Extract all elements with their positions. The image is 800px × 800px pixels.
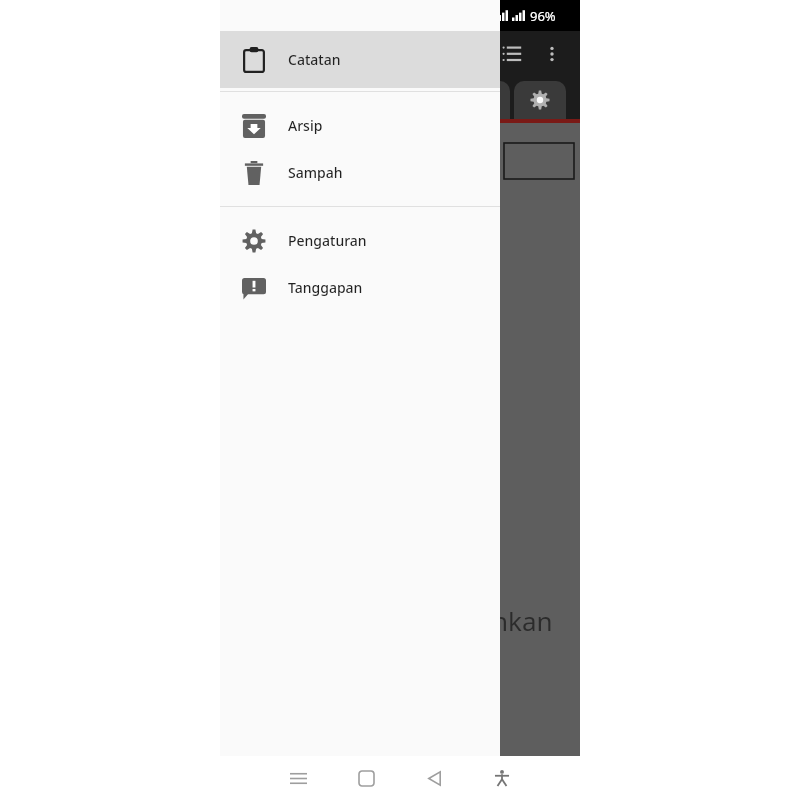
staticText: 96% bbox=[530, 7, 556, 25]
button[interactable]: Menu bbox=[280, 760, 316, 796]
button[interactable]: List view bbox=[492, 34, 532, 74]
button[interactable]: Home bbox=[348, 760, 384, 796]
button[interactable]: Accessibility bbox=[484, 760, 520, 796]
staticText: nkan bbox=[492, 603, 553, 638]
button[interactable]: More options bbox=[532, 34, 572, 74]
button[interactable]: Tab bbox=[466, 81, 510, 119]
button[interactable]: Sampah bbox=[220, 149, 500, 196]
button[interactable]: Tanggapan bbox=[220, 264, 500, 311]
button[interactable]: Arsip bbox=[220, 102, 500, 149]
staticText: Sampah bbox=[288, 163, 343, 182]
staticText: Pengaturan bbox=[288, 231, 367, 250]
staticText: Catatan bbox=[288, 50, 341, 69]
button[interactable]: Back bbox=[416, 760, 452, 796]
button[interactable]: Pengaturan bbox=[220, 217, 500, 264]
button[interactable]: Catatan bbox=[220, 31, 500, 88]
button[interactable]: Settings tab bbox=[514, 81, 566, 119]
staticText: Arsip bbox=[288, 116, 323, 135]
staticText: Tanggapan bbox=[288, 278, 363, 297]
